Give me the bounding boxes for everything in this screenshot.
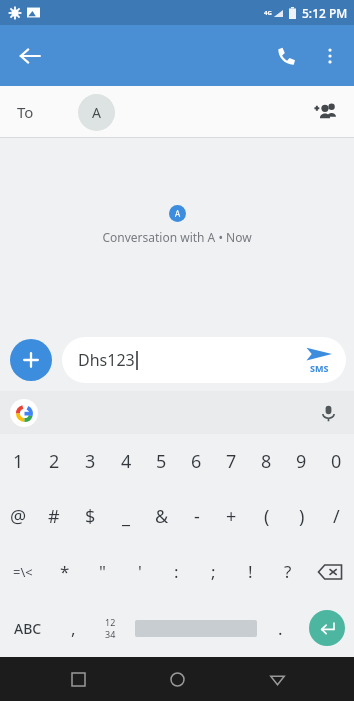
staticText: ' — [138, 560, 142, 583]
staticText: 7 — [226, 449, 237, 474]
staticText: : — [174, 560, 179, 583]
staticText: ) — [299, 504, 305, 529]
button[interactable]: Delete — [306, 544, 354, 599]
staticText: ? — [284, 560, 292, 583]
button[interactable]: 6 — [179, 434, 214, 489]
staticText: / — [333, 504, 340, 529]
button[interactable]: ABC — [0, 599, 55, 657]
button[interactable]: @ — [0, 489, 36, 544]
button[interactable]: " — [84, 544, 121, 599]
button[interactable]: 1 — [0, 434, 36, 489]
button[interactable]: + — [214, 489, 249, 544]
button[interactable]: ' — [121, 544, 158, 599]
button[interactable]: Back — [255, 657, 299, 701]
button[interactable]: Send SMS — [306, 347, 332, 374]
button[interactable]: More options — [308, 34, 352, 78]
staticText: " — [99, 560, 106, 583]
staticText: 8 — [261, 449, 272, 474]
button[interactable]: 5 — [144, 434, 179, 489]
button[interactable]: & — [144, 489, 179, 544]
button[interactable]: Call — [264, 34, 308, 78]
staticText: ! — [248, 560, 253, 583]
staticText: # — [48, 504, 60, 529]
staticText: . — [278, 617, 283, 640]
staticText: 2 — [49, 449, 60, 474]
staticText: =\< — [13, 563, 33, 581]
staticText: ( — [264, 504, 270, 529]
button[interactable]: 8 — [249, 434, 284, 489]
button[interactable]: 4 — [108, 434, 144, 489]
button[interactable]: Voice input — [312, 397, 344, 429]
button[interactable]: 9 — [284, 434, 319, 489]
button[interactable]: Recents — [56, 657, 100, 701]
button[interactable]: , — [55, 599, 92, 657]
button[interactable]: Add people — [304, 91, 346, 133]
staticText: , — [71, 617, 76, 640]
staticText: 1 — [13, 449, 24, 474]
staticText: 0 — [331, 449, 342, 474]
button[interactable]: * — [46, 544, 84, 599]
button[interactable]: 0 — [319, 434, 354, 489]
staticText: Conversation with A • Now — [102, 229, 252, 245]
staticText: 34 — [105, 628, 116, 640]
button[interactable]: ) — [284, 489, 319, 544]
staticText: Dhs123 — [78, 349, 135, 371]
button[interactable]: ( — [249, 489, 284, 544]
staticText: 3 — [85, 449, 96, 474]
button[interactable]: Numbers — [92, 599, 129, 657]
button[interactable]: : — [158, 544, 195, 599]
staticText: - — [194, 504, 200, 529]
button[interactable]: ! — [232, 544, 269, 599]
button[interactable]: Space — [129, 599, 262, 657]
staticText: 9 — [296, 449, 307, 474]
staticText: @ — [10, 504, 27, 529]
button[interactable]: 2 — [36, 434, 72, 489]
button[interactable]: - — [179, 489, 214, 544]
button[interactable]: ; — [195, 544, 232, 599]
button[interactable]: _ — [108, 489, 144, 544]
staticText: A — [175, 208, 181, 219]
staticText: 4 — [121, 449, 132, 474]
button[interactable]: 3 — [72, 434, 108, 489]
staticText: * — [60, 560, 70, 583]
staticText: 6 — [191, 449, 202, 474]
staticText: ABC — [14, 619, 42, 638]
staticText: SMS — [310, 362, 329, 374]
button[interactable]: Google — [10, 399, 38, 427]
button[interactable]: / — [319, 489, 354, 544]
button[interactable]: 7 — [214, 434, 249, 489]
button[interactable]: . — [262, 599, 299, 657]
button[interactable]: ? — [269, 544, 306, 599]
button[interactable]: $ — [72, 489, 108, 544]
staticText: & — [155, 504, 169, 529]
staticText: $ — [85, 504, 96, 529]
staticText: _ — [122, 504, 130, 529]
button[interactable]: Attach — [10, 339, 52, 381]
staticText: A — [92, 103, 101, 122]
staticText: 4G — [264, 9, 272, 17]
staticText: To — [17, 102, 34, 122]
staticText: + — [226, 504, 237, 529]
button[interactable]: Home — [155, 657, 199, 701]
button[interactable]: Back — [8, 34, 52, 78]
staticText: ; — [211, 560, 216, 583]
button[interactable]: =\< — [0, 544, 46, 599]
button[interactable]: # — [36, 489, 72, 544]
staticText: 5 — [156, 449, 167, 474]
button[interactable]: A — [78, 94, 115, 131]
button[interactable]: Enter — [299, 599, 354, 657]
staticText: 5:12 PM — [302, 5, 348, 21]
button[interactable]: Dhs123 — [62, 337, 346, 383]
staticText: 12 — [105, 616, 116, 628]
